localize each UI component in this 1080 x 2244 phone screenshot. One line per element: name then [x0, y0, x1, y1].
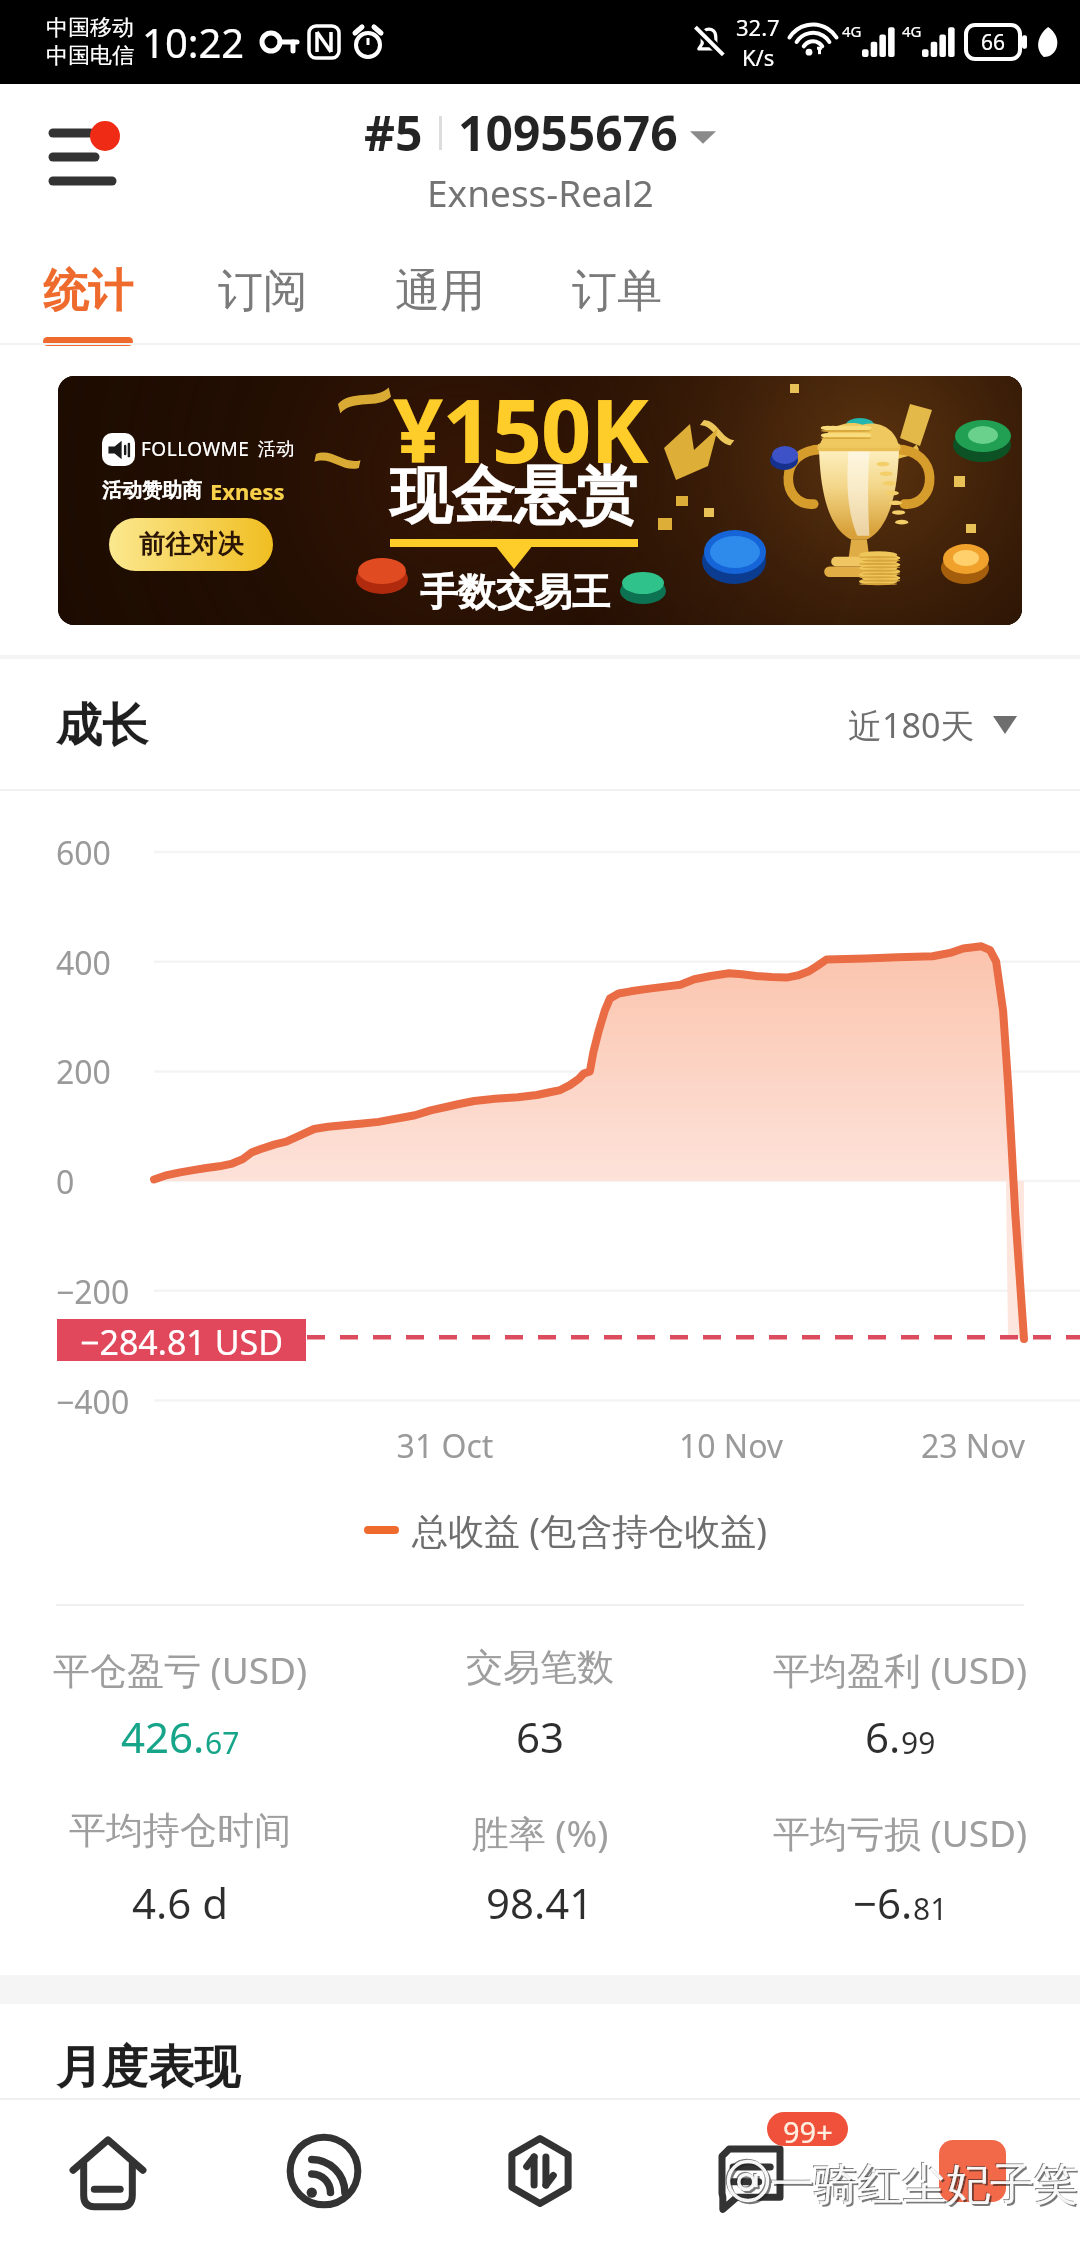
staticText: 平均亏损 (USD) [720, 1807, 1080, 1858]
staticText: 32.7 [736, 12, 780, 42]
button[interactable]: 通用 [352, 230, 528, 350]
staticText: ¥150K [393, 376, 648, 489]
staticText: 98.41 [486, 1874, 594, 1931]
staticText: 23 Nov [893, 1424, 1053, 1468]
staticText: 交易笔数 [360, 1644, 720, 1691]
staticText: 中国电信 [46, 42, 134, 70]
staticText: 99+ [783, 2112, 833, 2146]
button[interactable]: 订单 [529, 230, 705, 350]
button[interactable]: Trade [432, 2098, 648, 2244]
staticText: 现金悬赏 [390, 457, 638, 535]
staticText: 4G [902, 21, 922, 41]
staticText: 月度表现 [56, 2039, 240, 2097]
staticText: 400 [56, 941, 111, 985]
staticText: 手数交易王 [420, 568, 610, 616]
button[interactable]: Discover [216, 2098, 432, 2244]
button[interactable]: Home [0, 2098, 216, 2244]
staticText: 活动 [258, 438, 294, 461]
staticText: 通用 [395, 263, 485, 320]
staticText: 活动赞助商 [102, 478, 202, 503]
staticText: 0 [56, 1160, 75, 1204]
staticText: 426. [121, 1708, 205, 1765]
button[interactable]: 近180天 [848, 700, 1017, 750]
staticText: 近180天 [848, 702, 975, 748]
staticText: 4G [842, 21, 862, 41]
staticText: 前往对决 [139, 528, 243, 561]
staticText: −400 [56, 1380, 130, 1424]
button[interactable]: 前往对决 [109, 518, 273, 571]
staticText: 订单 [572, 263, 662, 320]
staticText: 600 [56, 831, 111, 875]
staticText: Exness-Real2 [427, 167, 654, 217]
staticText: 81 [913, 1888, 948, 1929]
staticText: 4.6 d [132, 1874, 229, 1931]
staticText: 66 [981, 28, 1006, 57]
staticText: 10955676 [458, 100, 678, 165]
staticText: −6. [853, 1874, 913, 1931]
staticText: 200 [56, 1050, 111, 1094]
button[interactable]: 订阅 [175, 230, 351, 350]
staticText: 10 Nov [651, 1424, 811, 1468]
staticText: 中国移动 [46, 14, 134, 42]
staticText: 平均盈利 (USD) [720, 1644, 1080, 1695]
staticText: 统计 [43, 263, 133, 320]
staticText: 平仓盈亏 (USD) [0, 1644, 360, 1695]
staticText: K/s [742, 42, 775, 72]
staticText: −200 [56, 1270, 130, 1314]
button[interactable]: FOLLOWME [58, 376, 1022, 625]
staticText: 6. [865, 1708, 901, 1765]
staticText: 胜率 (%) [360, 1807, 720, 1858]
button[interactable]: Menu [40, 108, 130, 192]
staticText: 63 [516, 1708, 565, 1765]
button[interactable]: Messages [648, 2098, 864, 2244]
staticText: Exness [210, 476, 285, 504]
staticText: 67 [205, 1722, 240, 1763]
staticText: 订阅 [218, 263, 308, 320]
staticText: #5 [364, 100, 423, 165]
staticText: 31 Oct [365, 1424, 525, 1468]
staticText: 成长 [56, 697, 148, 755]
staticText: 平均持仓时间 [0, 1807, 360, 1854]
staticText: 一骑红尘妃子笑 [770, 2157, 1078, 2205]
button[interactable]: 统计 [0, 230, 176, 350]
staticText: 99 [901, 1722, 936, 1763]
staticText: 一骑红尘妃子笑 [769, 2156, 1077, 2204]
staticText: −284.81 USD [80, 1319, 283, 1361]
staticText: 10:22 [142, 15, 245, 69]
staticText: FOLLOWME [141, 436, 250, 462]
button[interactable]: Profile [864, 2098, 1080, 2244]
staticText: 总收益 (包含持仓收益) [412, 1506, 767, 1555]
staticText: 一骑红尘妃子笑 [772, 2159, 1080, 2207]
